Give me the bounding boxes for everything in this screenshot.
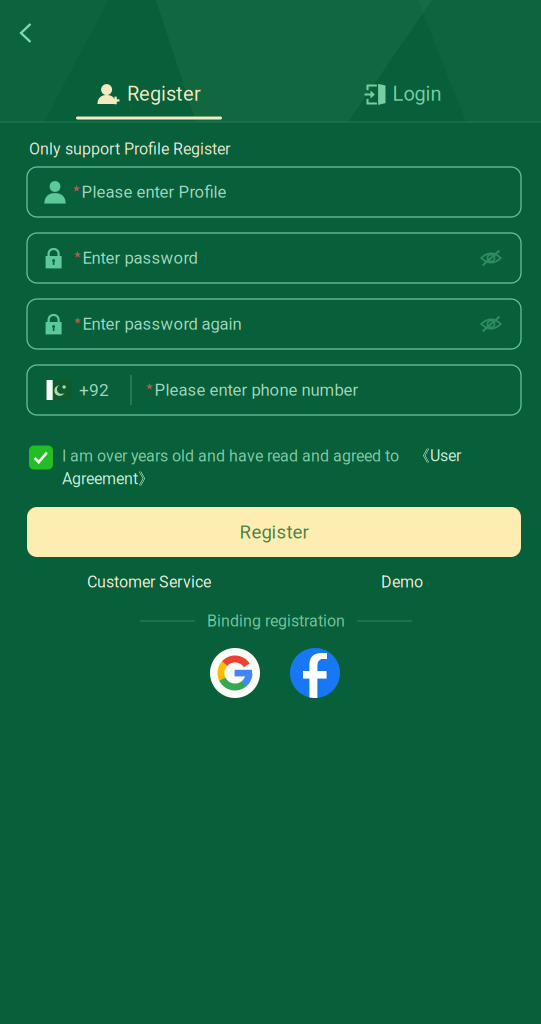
staticText: Register [239,521,308,543]
button[interactable]: Demo [347,564,457,600]
staticText: I am over years old and have read and ag… [62,447,399,465]
button[interactable]: Show password again [469,302,513,346]
button[interactable]: Back [3,10,49,56]
button[interactable]: Customer Service [64,564,234,600]
staticText: Agreement》 [62,469,154,489]
button[interactable]: Agree to user agreement [26,442,56,472]
button[interactable]: Show password [469,236,513,280]
staticText: Enter password [82,248,197,268]
staticText: Please enter phone number [154,380,358,400]
staticText: Login [392,82,441,106]
staticText: +92 [79,380,109,400]
button[interactable]: Register [34,65,264,123]
button[interactable]: Login [303,65,503,123]
button[interactable]: Sign up with Facebook [290,648,340,698]
button[interactable]: Sign up with Google [210,648,260,698]
staticText: 《User [399,446,461,466]
staticText: Please enter Profile [81,182,226,202]
staticText: Register [127,82,201,106]
staticText: Binding registration [207,612,345,630]
staticText: Customer Service [87,573,211,591]
button[interactable]: Register [27,507,521,557]
staticText: Demo [381,573,423,591]
staticText: Enter password again [82,314,241,334]
staticText: Only support Profile Register [29,140,230,158]
button[interactable]: Select country code [46,366,130,414]
